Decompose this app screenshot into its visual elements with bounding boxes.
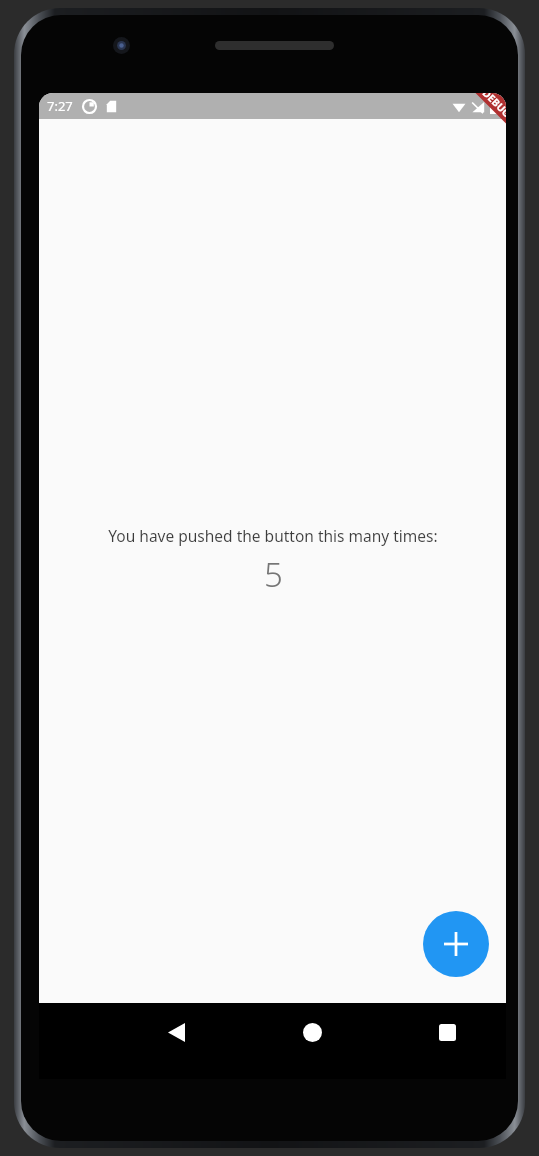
button[interactable]: Home	[249, 1003, 375, 1061]
button[interactable]: Increment	[423, 911, 489, 977]
staticText: You have pushed the button this many tim…	[108, 525, 438, 546]
button[interactable]: Recent apps	[385, 1003, 509, 1061]
staticText: DEBUG	[480, 93, 506, 120]
button[interactable]: Back	[114, 1003, 238, 1061]
staticText: 7:27	[47, 97, 73, 115]
staticText: 5	[264, 552, 283, 597]
